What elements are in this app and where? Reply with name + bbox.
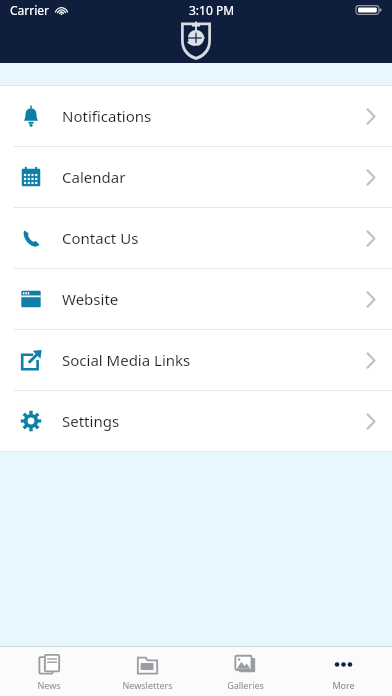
- staticText: Contact Us: [62, 228, 139, 248]
- staticText: Website: [62, 289, 119, 309]
- staticText: News: [37, 679, 61, 691]
- staticText: Notifications: [62, 106, 152, 126]
- button[interactable]: More: [294, 647, 392, 696]
- staticText: Social Media Links: [62, 350, 191, 370]
- button[interactable]: Website: [0, 269, 392, 329]
- button[interactable]: Contact Us: [0, 208, 392, 268]
- staticText: Newsletters: [122, 679, 173, 691]
- button[interactable]: Newsletters: [98, 647, 196, 696]
- button[interactable]: Calendar: [0, 147, 392, 207]
- staticText: Carrier: [10, 2, 50, 18]
- staticText: Galleries: [227, 679, 264, 691]
- staticText: 3:10 PM: [189, 2, 235, 18]
- button[interactable]: News: [0, 647, 98, 696]
- staticText: Settings: [62, 411, 120, 431]
- button[interactable]: Settings: [0, 391, 392, 451]
- button[interactable]: Social Media Links: [0, 330, 392, 390]
- staticText: Calendar: [62, 167, 126, 187]
- button[interactable]: Galleries: [196, 647, 294, 696]
- button[interactable]: Notifications: [0, 86, 392, 146]
- staticText: More: [332, 679, 355, 691]
